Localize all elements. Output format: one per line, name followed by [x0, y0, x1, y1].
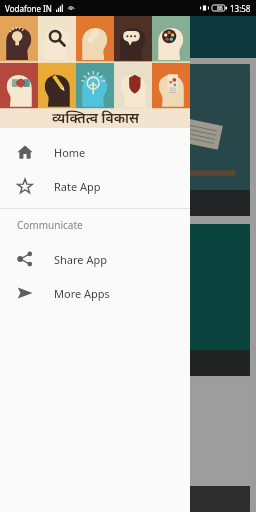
- button[interactable]: Tips: [6, 384, 250, 512]
- staticText: Home: [54, 145, 86, 160]
- button[interactable]: Rate App: [0, 169, 190, 203]
- staticText: Rate App: [54, 179, 101, 194]
- staticText: व्यक्तित्व विकास: [52, 108, 139, 127]
- staticText: Communicate: [17, 218, 83, 232]
- staticText: 13:58: [230, 3, 251, 14]
- button[interactable]: Share App: [0, 242, 190, 276]
- staticText: Share App: [54, 252, 107, 267]
- staticText: More Apps: [54, 286, 110, 301]
- button[interactable]: Success: [6, 224, 250, 376]
- staticText: Vodafone IN: [5, 3, 52, 14]
- button[interactable]: Home: [0, 135, 190, 169]
- staticText: 86: [217, 5, 223, 12]
- button[interactable]: More Apps: [0, 276, 190, 310]
- staticText: Advice: [16, 195, 53, 211]
- button[interactable]: Advice: [6, 64, 250, 216]
